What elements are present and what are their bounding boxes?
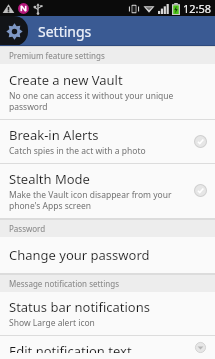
staticText: 12:58 bbox=[183, 1, 212, 16]
staticText: Show Large alert icon bbox=[9, 317, 95, 329]
staticText: Change your password bbox=[9, 246, 150, 264]
staticText: No one can access it without your unique… bbox=[9, 90, 207, 112]
button[interactable]: Stealth Mode bbox=[0, 164, 215, 218]
button[interactable]: Status bar notifications bbox=[0, 292, 215, 335]
staticText: Premium feature settings bbox=[9, 50, 105, 61]
staticText: Password bbox=[9, 223, 46, 234]
button[interactable]: Change your password bbox=[0, 237, 215, 273]
staticText: Status bar notifications bbox=[9, 298, 150, 316]
staticText: Message notification settings bbox=[9, 278, 120, 289]
button[interactable]: Break-in Alerts bbox=[0, 120, 215, 163]
button[interactable]: App icon, navigate up bbox=[0, 16, 28, 46]
staticText: Make the Vault icon disappear from your … bbox=[9, 189, 188, 211]
staticText: Create a new Vault bbox=[9, 71, 123, 89]
staticText: Catch spies in the act with a photo bbox=[9, 145, 146, 157]
staticText: Settings bbox=[38, 22, 92, 41]
button[interactable]: Edit notification text bbox=[0, 336, 215, 359]
staticText: Break-in Alerts bbox=[9, 126, 99, 144]
staticText: Edit notification text bbox=[9, 342, 132, 353]
staticText: Stealth Mode bbox=[9, 170, 90, 188]
button[interactable]: Create a new Vault bbox=[0, 64, 215, 119]
